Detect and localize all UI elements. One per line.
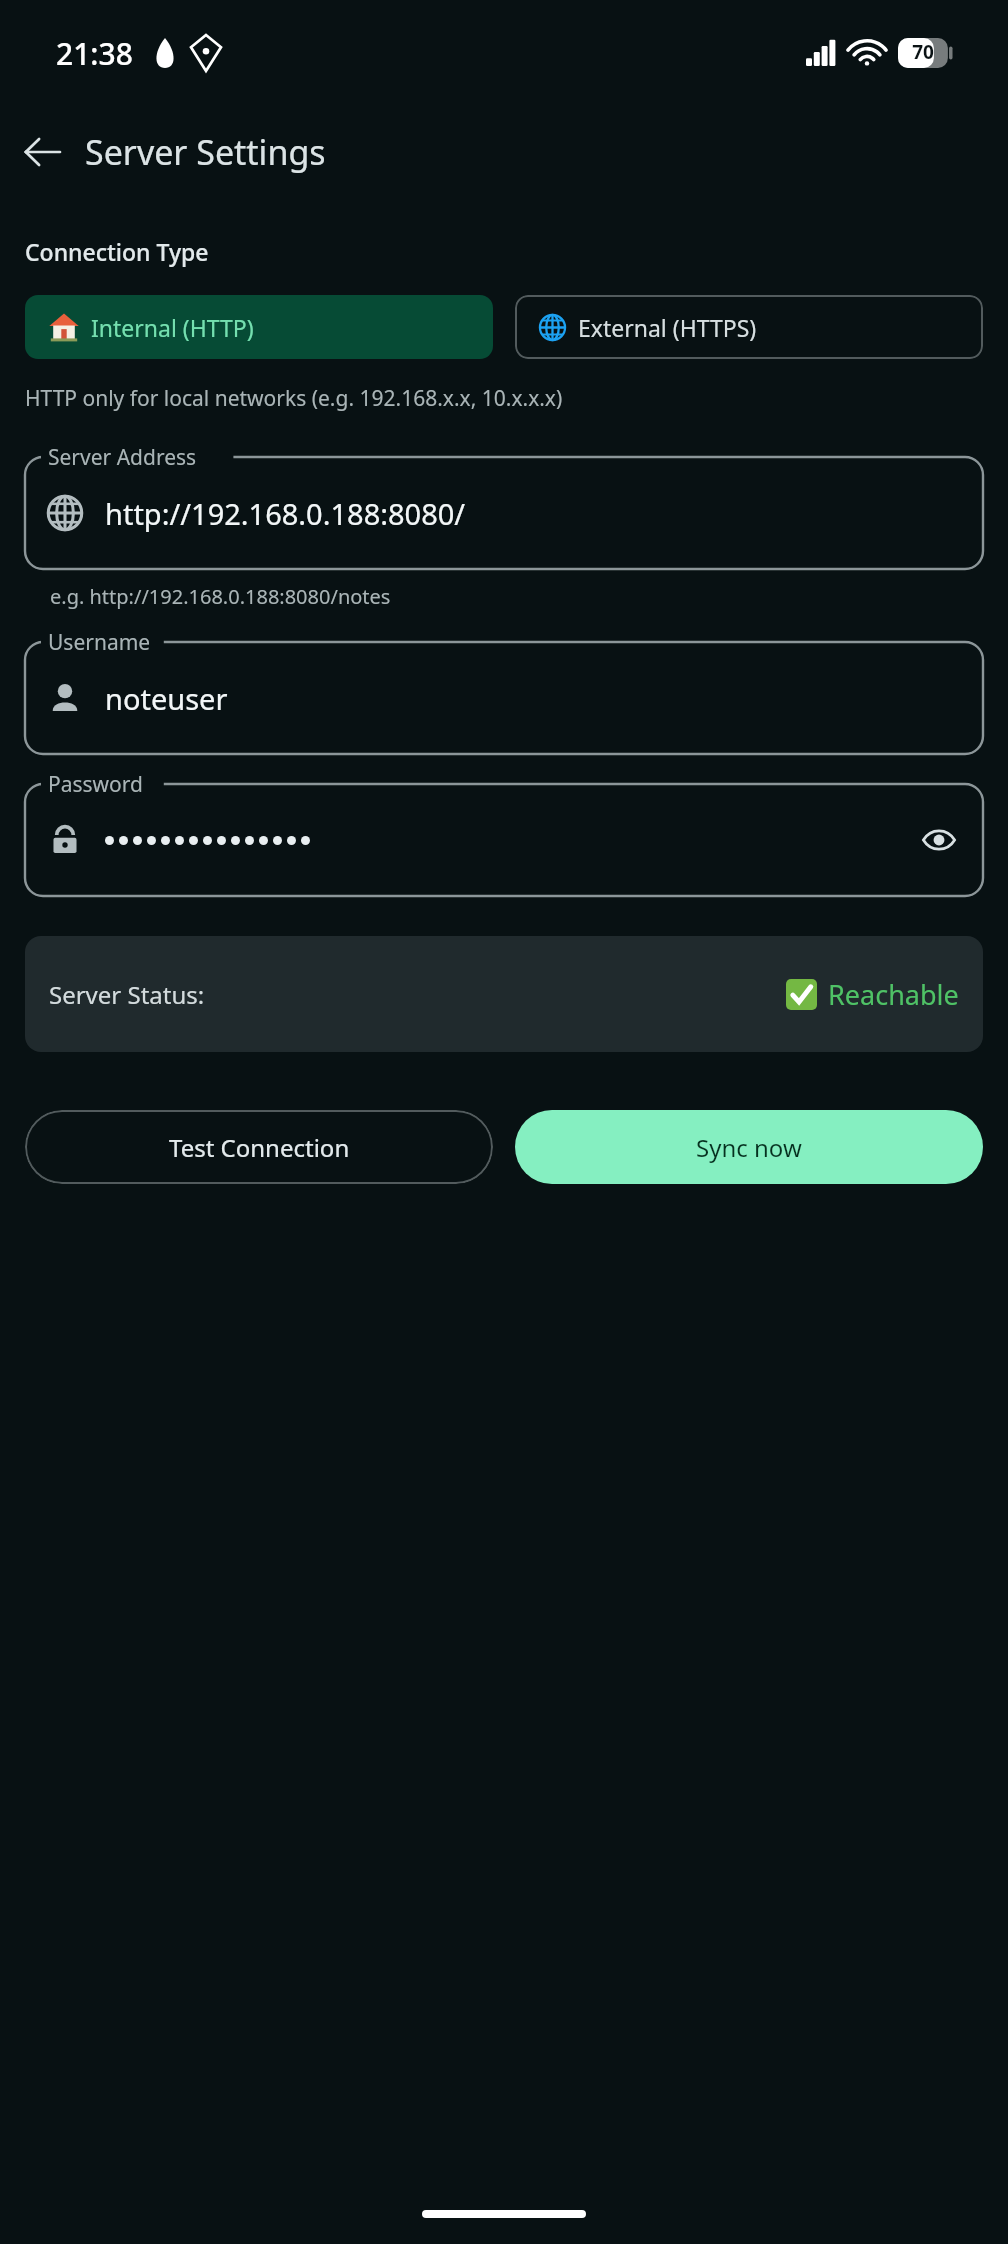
staticText: http://192.168.0.188:8080/ <box>105 494 466 533</box>
staticText: Server Settings <box>85 129 326 175</box>
staticText: Reachable <box>828 976 959 1013</box>
button[interactable]: Server Address <box>25 457 983 569</box>
staticText: External (HTTPS) <box>578 312 757 343</box>
button[interactable]: Test Connection <box>25 1110 493 1184</box>
button[interactable]: Back <box>11 121 73 183</box>
button[interactable]: External (HTTPS) <box>515 295 983 359</box>
button[interactable]: Internal (HTTP) <box>25 295 493 359</box>
staticText: Server Status: <box>49 978 205 1011</box>
staticText: noteuser <box>105 679 228 718</box>
staticText: Username <box>48 628 151 657</box>
staticText: 21:38 <box>56 33 133 74</box>
staticText: HTTP only for local networks (e.g. 192.1… <box>25 384 563 413</box>
staticText: 70 <box>898 39 948 65</box>
button[interactable]: Username <box>25 642 983 754</box>
staticText: e.g. http://192.168.0.188:8080/notes <box>50 583 391 610</box>
staticText: Sync now <box>696 1131 802 1164</box>
staticText: Test Connection <box>169 1131 350 1164</box>
staticText: Server Address <box>48 443 197 472</box>
button[interactable]: Server Status: <box>25 936 983 1052</box>
staticText: Internal (HTTP) <box>91 312 254 343</box>
staticText: Password <box>48 770 143 799</box>
staticText: Connection Type <box>25 236 209 267</box>
button[interactable]: Password <box>25 784 983 896</box>
button[interactable]: Sync now <box>515 1110 983 1184</box>
button[interactable]: Show password <box>913 814 965 866</box>
